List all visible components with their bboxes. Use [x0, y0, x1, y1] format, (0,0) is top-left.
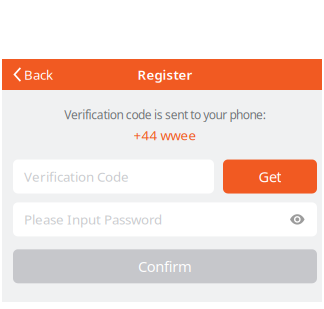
button[interactable]: Back	[2, 59, 53, 90]
button[interactable]: Confirm	[13, 249, 317, 283]
button[interactable]: Get	[223, 159, 317, 193]
staticText: Verification Code	[24, 168, 129, 185]
staticText: Register	[137, 66, 192, 83]
staticText: Confirm	[138, 257, 192, 276]
button[interactable]: Verification Code	[13, 159, 214, 193]
staticText: Back	[24, 66, 53, 83]
button[interactable]: Show password	[290, 214, 305, 225]
staticText: Verification code is sent to your phone:	[64, 106, 266, 122]
staticText: +44 wwee	[133, 126, 196, 144]
staticText: Please Input Password	[24, 210, 162, 228]
staticText: Get	[259, 167, 281, 186]
